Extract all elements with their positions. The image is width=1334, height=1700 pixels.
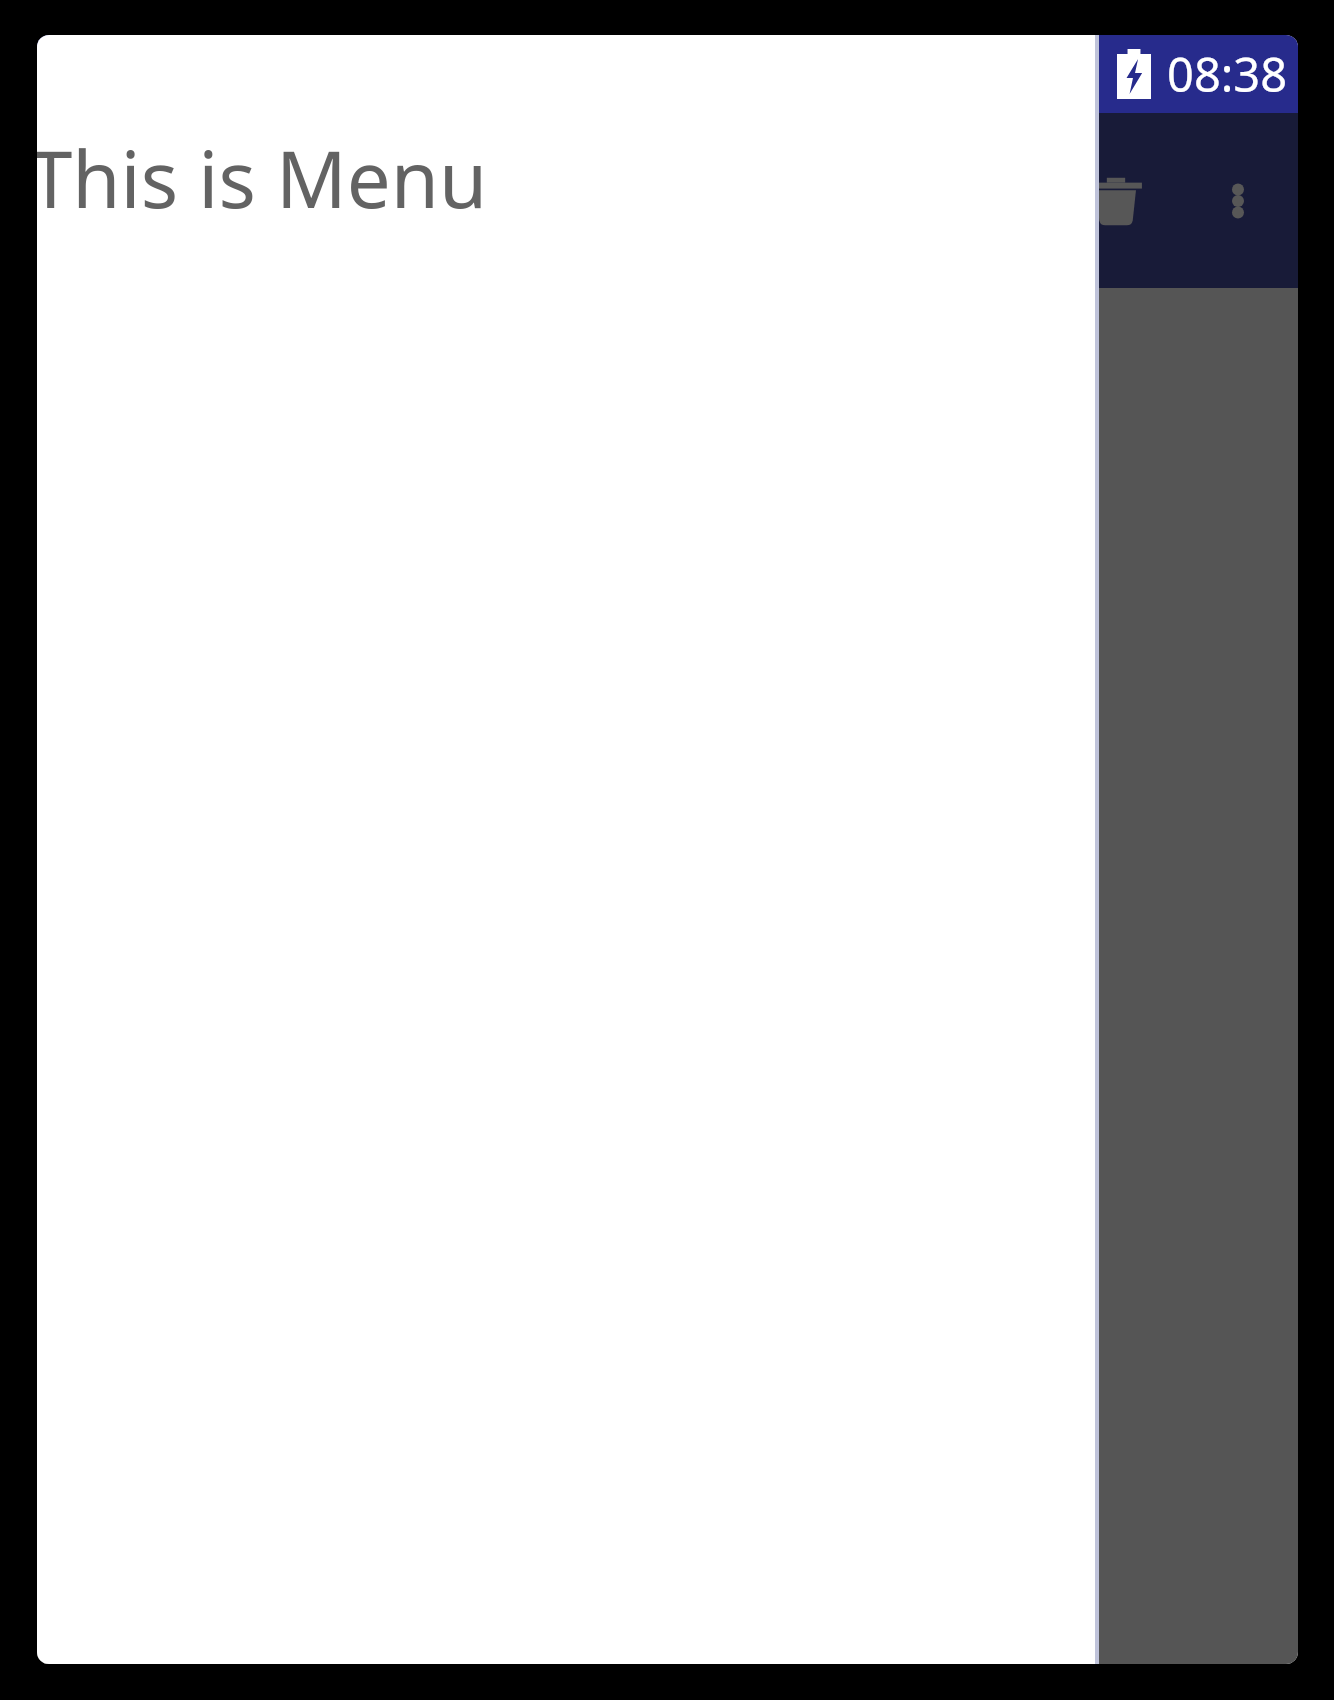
staticText: 08:38 (1167, 42, 1288, 106)
button[interactable]: Delete (1066, 151, 1166, 251)
staticText: This is Menu (37, 125, 488, 231)
button[interactable]: This is Menu (37, 35, 1095, 1664)
button[interactable]: More options (1188, 151, 1288, 251)
